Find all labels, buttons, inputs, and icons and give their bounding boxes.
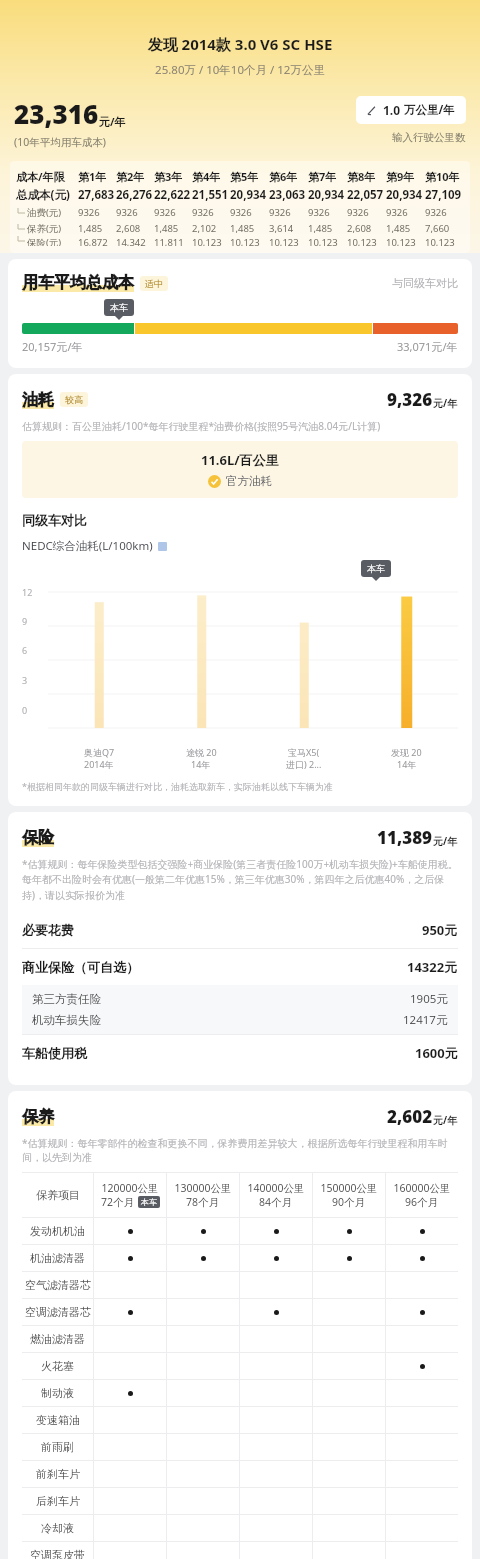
staticText: 第2年 xyxy=(116,169,145,184)
staticText: 9326 xyxy=(116,206,138,219)
staticText: 96个月 xyxy=(405,1195,439,1209)
staticText: 估算规则：百公里油耗/100*每年行驶里程*油费价格(按照95号汽油8.04元/… xyxy=(22,419,381,433)
staticText: 9326 xyxy=(78,206,100,219)
staticText: 9326 xyxy=(347,206,369,219)
staticText: 10,123 xyxy=(347,236,377,246)
staticText: 7,660 xyxy=(425,222,450,235)
staticText: 制动液 xyxy=(41,1386,74,1400)
staticText: 1,485 xyxy=(78,222,103,235)
staticText: 本车 xyxy=(141,1197,157,1207)
staticText: 较高 xyxy=(65,394,83,405)
staticText: 2014年 xyxy=(84,758,114,770)
staticText: 燃油滤清器 xyxy=(30,1332,85,1346)
staticText: 22,622 xyxy=(154,187,191,203)
staticText: 空调泵皮带 xyxy=(30,1548,85,1559)
staticText: 25.80万 / 10年10个月 / 12万公里 xyxy=(0,62,480,78)
staticText: 第3年 xyxy=(154,169,183,184)
staticText: 11.6L/百公里 xyxy=(201,451,279,469)
staticText: 10,123 xyxy=(308,236,338,246)
staticText: 商业保险（可自选） xyxy=(22,959,139,975)
staticText: 元/年 xyxy=(433,1113,458,1127)
staticText: 14322元 xyxy=(407,958,458,976)
staticText: 26,276 xyxy=(116,187,153,203)
staticText: 1,485 xyxy=(386,222,411,235)
staticText: 21,551 xyxy=(192,187,229,203)
staticText: 78个月 xyxy=(186,1195,220,1209)
staticText: 12 xyxy=(22,586,33,598)
staticText: 33,071元/年 xyxy=(397,339,458,354)
staticText: 官方油耗 xyxy=(226,474,272,488)
staticText: 元/年 xyxy=(433,396,458,410)
staticText: 130000公里 xyxy=(174,1181,232,1195)
button[interactable]: 商业保险（可自选） xyxy=(22,949,458,985)
staticText: 第1年 xyxy=(78,169,107,184)
staticText: 前雨刷 xyxy=(41,1440,74,1454)
staticText: 第8年 xyxy=(347,169,376,184)
staticText: 1.0 xyxy=(383,102,401,118)
staticText: 27,109 xyxy=(425,187,462,203)
staticText: 1,485 xyxy=(230,222,255,235)
staticText: 3,614 xyxy=(269,222,294,235)
staticText: 10,123 xyxy=(192,236,222,246)
staticText: 第9年 xyxy=(386,169,415,184)
staticText: 9,326 xyxy=(387,388,433,411)
staticText: 输入行驶公里数 xyxy=(392,131,466,144)
staticText: 进口) 2... xyxy=(286,758,322,770)
staticText: 150000公里 xyxy=(320,1181,378,1195)
staticText: 总成本(元) xyxy=(16,187,70,203)
staticText: 保险 xyxy=(22,828,54,848)
staticText: 元/年 xyxy=(433,834,458,848)
staticText: NEDC综合油耗(L/100km) xyxy=(22,538,153,554)
staticText: *估算规则：每年零部件的检查和更换不同，保养费用差异较大，根据所选每年行驶里程和… xyxy=(22,1136,458,1164)
staticText: 途锐 20 xyxy=(186,746,217,758)
staticText: 第三方责任险 xyxy=(32,992,101,1006)
button[interactable]: 1.0 xyxy=(356,96,466,124)
staticText: 90个月 xyxy=(332,1195,366,1209)
staticText: 1600元 xyxy=(415,1044,458,1062)
staticText: 20,934 xyxy=(230,187,267,203)
staticText: 元/年 xyxy=(99,114,126,129)
staticText: 冷却液 xyxy=(41,1521,74,1535)
staticText: 10,123 xyxy=(386,236,416,246)
button[interactable]: 车船使用税 xyxy=(22,1035,458,1071)
staticText: 本车 xyxy=(110,302,128,313)
staticText: 9326 xyxy=(425,206,447,219)
staticText: *根据相同年款的同级车辆进行对比，油耗选取新车，实际油耗以线下车辆为准 xyxy=(22,780,333,792)
staticText: 22,057 xyxy=(347,187,384,203)
staticText: 油费(元) xyxy=(27,206,62,219)
staticText: 油耗 xyxy=(22,390,54,410)
staticText: 适中 xyxy=(145,278,163,289)
staticText: 变速箱油 xyxy=(36,1413,80,1427)
staticText: 1,485 xyxy=(154,222,179,235)
button[interactable]: 必要花费 xyxy=(22,912,458,948)
staticText: 机动车损失险 xyxy=(32,1013,101,1027)
staticText: 10,123 xyxy=(269,236,299,246)
staticText: 用车平均总成本 xyxy=(22,273,134,293)
staticText: 9326 xyxy=(230,206,252,219)
staticText: 第5年 xyxy=(230,169,259,184)
staticText: 前刹车片 xyxy=(36,1467,80,1481)
staticText: 23,063 xyxy=(269,187,306,203)
staticText: 140000公里 xyxy=(247,1181,305,1195)
staticText: 160000公里 xyxy=(393,1181,451,1195)
staticText: 10,123 xyxy=(230,236,260,246)
staticText: 120000公里 xyxy=(101,1181,159,1195)
staticText: 宝马X5( xyxy=(288,746,320,758)
staticText: 第6年 xyxy=(269,169,298,184)
staticText: 3 xyxy=(22,674,28,686)
staticText: 6 xyxy=(22,644,28,656)
staticText: 第4年 xyxy=(192,169,221,184)
staticText: 第10年 xyxy=(425,169,460,184)
staticText: 发动机机油 xyxy=(30,1224,85,1238)
staticText: 车船使用税 xyxy=(22,1045,87,1061)
staticText: 14年 xyxy=(397,758,417,770)
staticText: 保险(元) xyxy=(27,236,62,246)
staticText: 保养(元) xyxy=(27,222,62,235)
staticText: 9 xyxy=(22,615,28,627)
button[interactable]: 说明 xyxy=(158,542,167,551)
staticText: 2,102 xyxy=(192,222,217,235)
staticText: 11,389 xyxy=(377,826,433,849)
staticText: 成本/年限 xyxy=(16,169,65,184)
staticText: 第7年 xyxy=(308,169,337,184)
staticText: 72个月 xyxy=(101,1195,135,1209)
